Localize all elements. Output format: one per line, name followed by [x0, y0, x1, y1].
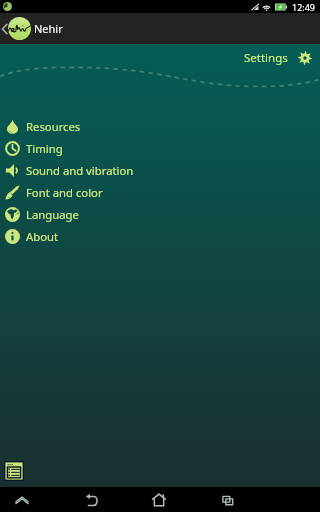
button[interactable]: Home	[141, 487, 177, 512]
button[interactable]: Timing	[0, 137, 320, 159]
button[interactable]: Resources	[0, 115, 320, 137]
staticText: Language	[26, 207, 79, 222]
button[interactable]: Font and color	[0, 181, 320, 203]
staticText: Nehir	[34, 21, 63, 36]
button[interactable]: Back	[74, 487, 110, 512]
staticText: About	[26, 229, 59, 244]
staticText: Resources	[26, 119, 81, 134]
staticText: Sound and vibration	[26, 163, 134, 178]
button[interactable]: Settings	[242, 48, 314, 68]
staticText: Timing	[26, 141, 63, 156]
staticText: Font and color	[26, 185, 103, 200]
button[interactable]: About	[0, 225, 320, 247]
button[interactable]: Language	[0, 203, 320, 225]
staticText: Settings	[244, 50, 288, 66]
button[interactable]: Menu	[4, 461, 24, 481]
staticText: 12:49	[292, 1, 316, 13]
button[interactable]: Sound and vibration	[0, 159, 320, 181]
button[interactable]: Collapse	[4, 487, 40, 512]
button[interactable]: Recent apps	[210, 487, 246, 512]
